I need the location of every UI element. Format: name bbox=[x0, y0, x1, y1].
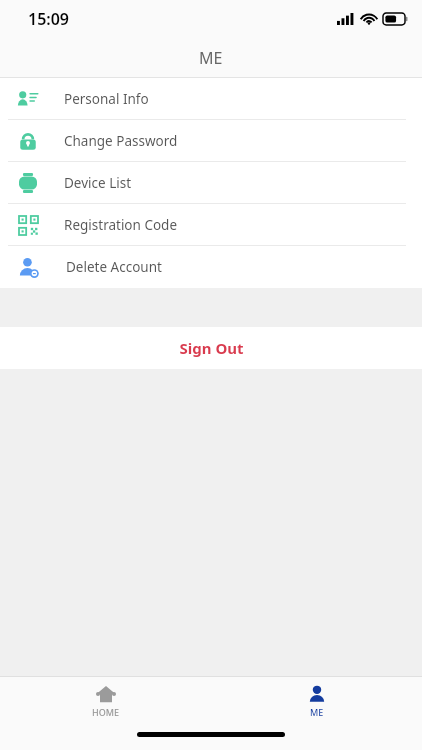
staticText: HOME bbox=[92, 706, 120, 718]
staticText: Change Password bbox=[64, 132, 178, 150]
button[interactable]: Personal Info bbox=[0, 78, 422, 120]
staticText: Personal Info bbox=[64, 90, 149, 108]
staticText: Sign Out bbox=[179, 338, 244, 358]
staticText: 15:09 bbox=[28, 8, 70, 30]
button[interactable]: Change Password bbox=[0, 120, 422, 162]
button[interactable]: Delete Account bbox=[0, 246, 422, 288]
button[interactable]: Device List bbox=[0, 162, 422, 204]
staticText: ME bbox=[199, 47, 223, 69]
staticText: Registration Code bbox=[64, 216, 178, 234]
button[interactable]: ME bbox=[211, 677, 422, 725]
button[interactable]: Sign Out bbox=[0, 327, 422, 369]
staticText: ME bbox=[310, 706, 324, 718]
staticText: Delete Account bbox=[66, 258, 162, 276]
button[interactable]: Registration Code bbox=[0, 204, 422, 246]
staticText: Device List bbox=[64, 174, 132, 192]
button[interactable]: HOME bbox=[0, 677, 211, 725]
